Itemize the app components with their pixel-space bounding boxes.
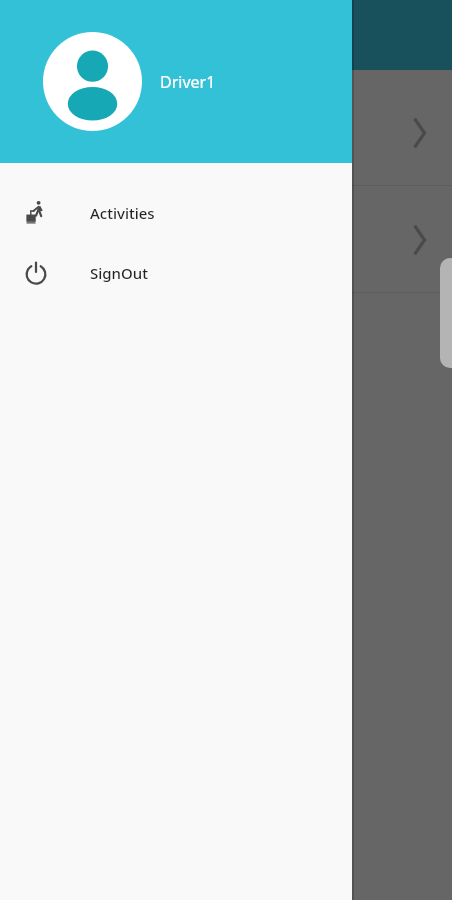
button[interactable]: SignOut	[0, 243, 352, 303]
button[interactable]: Driver1	[0, 0, 352, 163]
staticText: SignOut	[90, 263, 148, 283]
button[interactable]: Activities	[0, 183, 352, 243]
staticText: Activities	[90, 203, 155, 223]
staticText: Driver1	[160, 71, 216, 93]
